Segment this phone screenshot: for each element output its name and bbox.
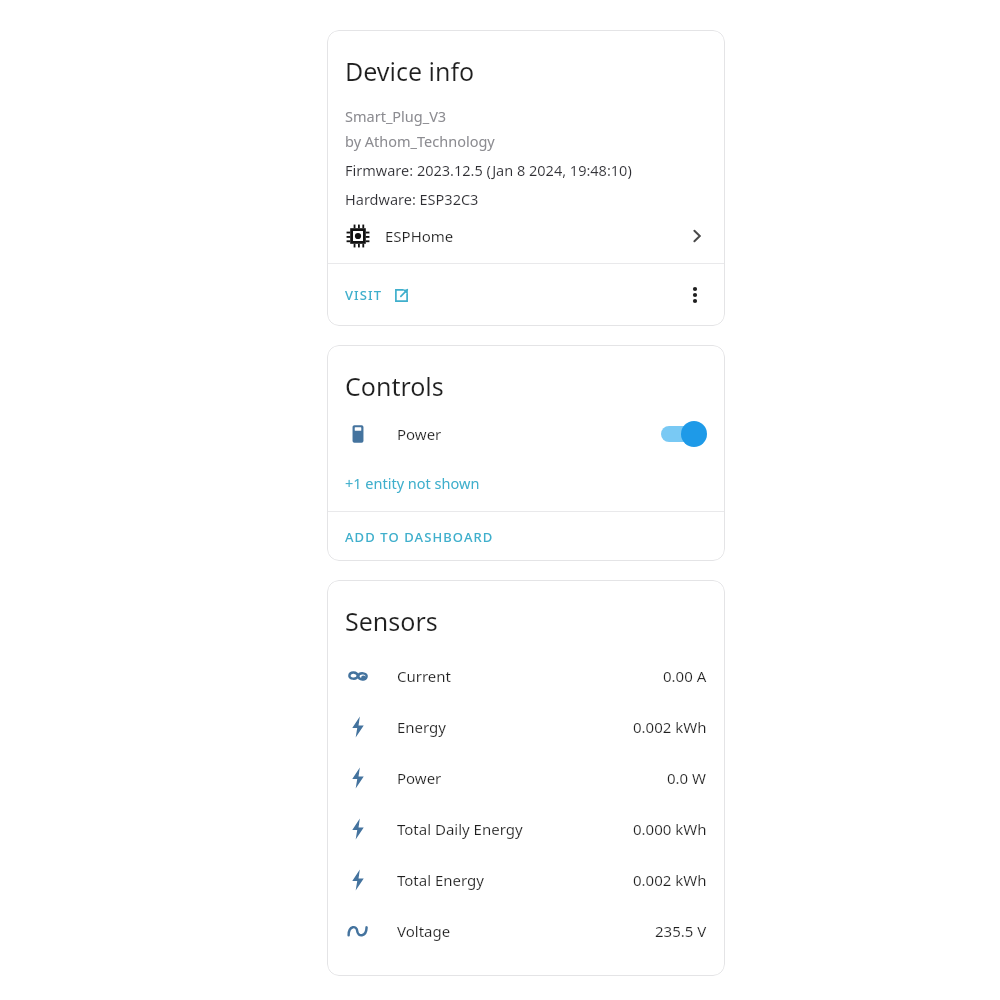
button[interactable]: Energy — [345, 701, 707, 752]
button[interactable]: Voltage — [345, 905, 707, 956]
staticText: Current — [397, 666, 451, 686]
staticText: Power — [397, 424, 442, 444]
staticText: 0.00 A — [663, 666, 707, 686]
button[interactable]: Power — [345, 409, 707, 459]
staticText: Firmware: 2023.12.5 (Jan 8 2024, 19:48:1… — [345, 160, 632, 180]
staticText: Sensors — [345, 604, 438, 638]
button[interactable]: +1 entity not shown — [345, 473, 480, 493]
staticText: by Athom_Technology — [345, 131, 495, 151]
button[interactable]: Power — [345, 752, 707, 803]
staticText: ESPHome — [385, 226, 454, 246]
staticText: ADD TO DASHBOARD — [345, 528, 494, 546]
staticText: Energy — [397, 717, 446, 737]
staticText: 0.0 W — [667, 768, 707, 788]
button[interactable]: Total Energy — [345, 854, 707, 905]
staticText: Total Energy — [397, 870, 484, 890]
staticText: 0.002 kWh — [633, 870, 707, 890]
button[interactable]: Current — [345, 650, 707, 701]
staticText: Total Daily Energy — [397, 819, 523, 839]
staticText: Controls — [345, 369, 444, 403]
button[interactable]: More options — [675, 275, 715, 315]
staticText: Hardware: ESP32C3 — [345, 189, 479, 209]
staticText: Smart_Plug_V3 — [345, 106, 447, 126]
button[interactable]: ADD TO DASHBOARD — [327, 512, 725, 561]
button[interactable]: Power toggle — [661, 421, 707, 447]
staticText: 0.000 kWh — [633, 819, 707, 839]
button[interactable]: VISIT — [337, 278, 418, 312]
staticText: 0.002 kWh — [633, 717, 707, 737]
button[interactable]: Total Daily Energy — [345, 803, 707, 854]
staticText: VISIT — [345, 286, 383, 304]
button[interactable]: ESPHome — [327, 209, 725, 263]
staticText: Voltage — [397, 921, 451, 941]
staticText: Device info — [345, 54, 475, 88]
staticText: 235.5 V — [655, 921, 707, 941]
staticText: Power — [397, 768, 442, 788]
